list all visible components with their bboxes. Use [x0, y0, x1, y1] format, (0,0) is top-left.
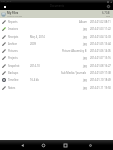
staticText: 2014-01-06 14:05: [90, 49, 111, 53]
staticText: Notes: [8, 86, 16, 90]
button[interactable]: Settings: [107, 5, 110, 8]
staticText: jpg: [83, 56, 87, 60]
staticText: Documents: [50, 4, 64, 8]
button[interactable]: Screenshot: [86, 141, 94, 149]
button[interactable]: Back: [18, 141, 26, 149]
staticText: Snapshot: [8, 64, 20, 68]
staticText: Archive: [8, 42, 17, 46]
staticText: Reports: [8, 20, 18, 24]
staticText: My Files: [7, 11, 19, 15]
staticText: Tue, Jan 2: [1, 0, 12, 3]
staticText: 2014-01-05 13:44: [90, 42, 111, 46]
staticText: jpg: [83, 35, 87, 39]
staticText: jpg: [83, 64, 87, 68]
staticText: 6.7GB: [102, 11, 110, 15]
staticText: Backups: [8, 71, 19, 75]
staticText: 2014-01-02 08:11: [90, 20, 111, 24]
button[interactable]: Receipts: [0, 33, 113, 40]
staticText: Sub Media / Journals: [61, 71, 87, 75]
button[interactable]: Pictures: [0, 47, 113, 54]
button[interactable]: Timeline: [0, 76, 113, 83]
button[interactable]: Archive: [0, 40, 113, 47]
staticText: Pictures: [8, 49, 18, 53]
staticText: 2014-10: [30, 64, 40, 68]
staticText: Picture Albums/xy B: [62, 49, 87, 53]
staticText: 2014-01-03 11:22: [90, 27, 111, 31]
button[interactable]: App icon: [4, 6, 6, 8]
staticText: jpg: [83, 42, 87, 46]
staticText: 2014-01-10 18:49: [90, 78, 111, 82]
staticText: Projects: [8, 56, 18, 60]
staticText: jpg: [83, 27, 87, 31]
staticText: Internal storage: [7, 15, 23, 18]
staticText: 16.4 kb: [30, 78, 39, 82]
staticText: Invoices: [8, 27, 18, 31]
button[interactable]: Snapshot: [0, 62, 113, 69]
staticText: Receipts: [8, 35, 19, 39]
staticText: 2014-01-08 16:27: [90, 64, 111, 68]
button[interactable]: Reports: [0, 18, 113, 25]
button[interactable]: Home: [39, 141, 47, 149]
staticText: free: [106, 15, 110, 18]
button[interactable]: Recent apps: [61, 141, 69, 149]
staticText: 2014-01-07 15:16: [90, 56, 111, 60]
button[interactable]: Notes: [0, 84, 113, 91]
staticText: Timeline: [8, 78, 19, 82]
staticText: 2014-01-11 19:50: [90, 86, 111, 90]
staticText: Album: [79, 20, 87, 24]
staticText: 2014-01-09 17:38: [90, 71, 111, 75]
button[interactable]: Projects: [0, 54, 113, 61]
staticText: jpg: [83, 78, 87, 82]
button[interactable]: Invoices: [0, 25, 113, 32]
staticText: jpg: [83, 86, 87, 90]
staticText: Mar, 4, 2014: [30, 35, 45, 39]
staticText: 2014-01-04 12:33: [90, 35, 111, 39]
staticText: 2009: [30, 42, 36, 46]
button[interactable]: Backups: [0, 69, 113, 76]
